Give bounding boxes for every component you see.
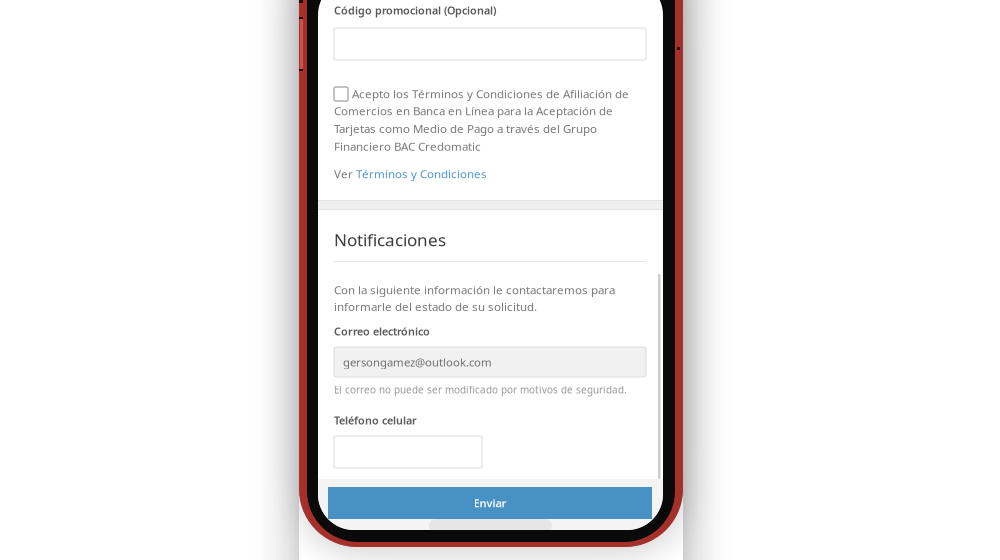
staticText: Ver <box>334 166 356 182</box>
staticText: Acepto los Términos y Condiciones de Afi… <box>352 86 629 102</box>
button[interactable]: Enviar <box>328 487 652 519</box>
staticText: Enviar <box>473 495 506 511</box>
staticText: El correo no puede ser modificado por mo… <box>334 383 627 396</box>
button[interactable]: Ver <box>334 166 487 182</box>
staticText: Términos y Condiciones <box>356 166 487 182</box>
button[interactable]: Acepto los Términos y Condiciones <box>334 87 348 101</box>
staticText: Comercios en Banca en Línea para la Acep… <box>334 103 613 154</box>
button[interactable]: Text field <box>334 28 646 60</box>
staticText: gersongamez@outlook.com <box>343 354 492 370</box>
staticText: Código promocional (Opcional) <box>334 3 496 18</box>
button[interactable]: gersongamez@outlook.com <box>334 347 646 377</box>
staticText: Con la siguiente información le contacta… <box>334 282 615 314</box>
staticText: Notificaciones <box>334 228 446 251</box>
staticText: Correo electrónico <box>334 324 430 339</box>
button[interactable]: Text field <box>334 436 482 468</box>
staticText: Teléfono celular <box>334 413 417 428</box>
